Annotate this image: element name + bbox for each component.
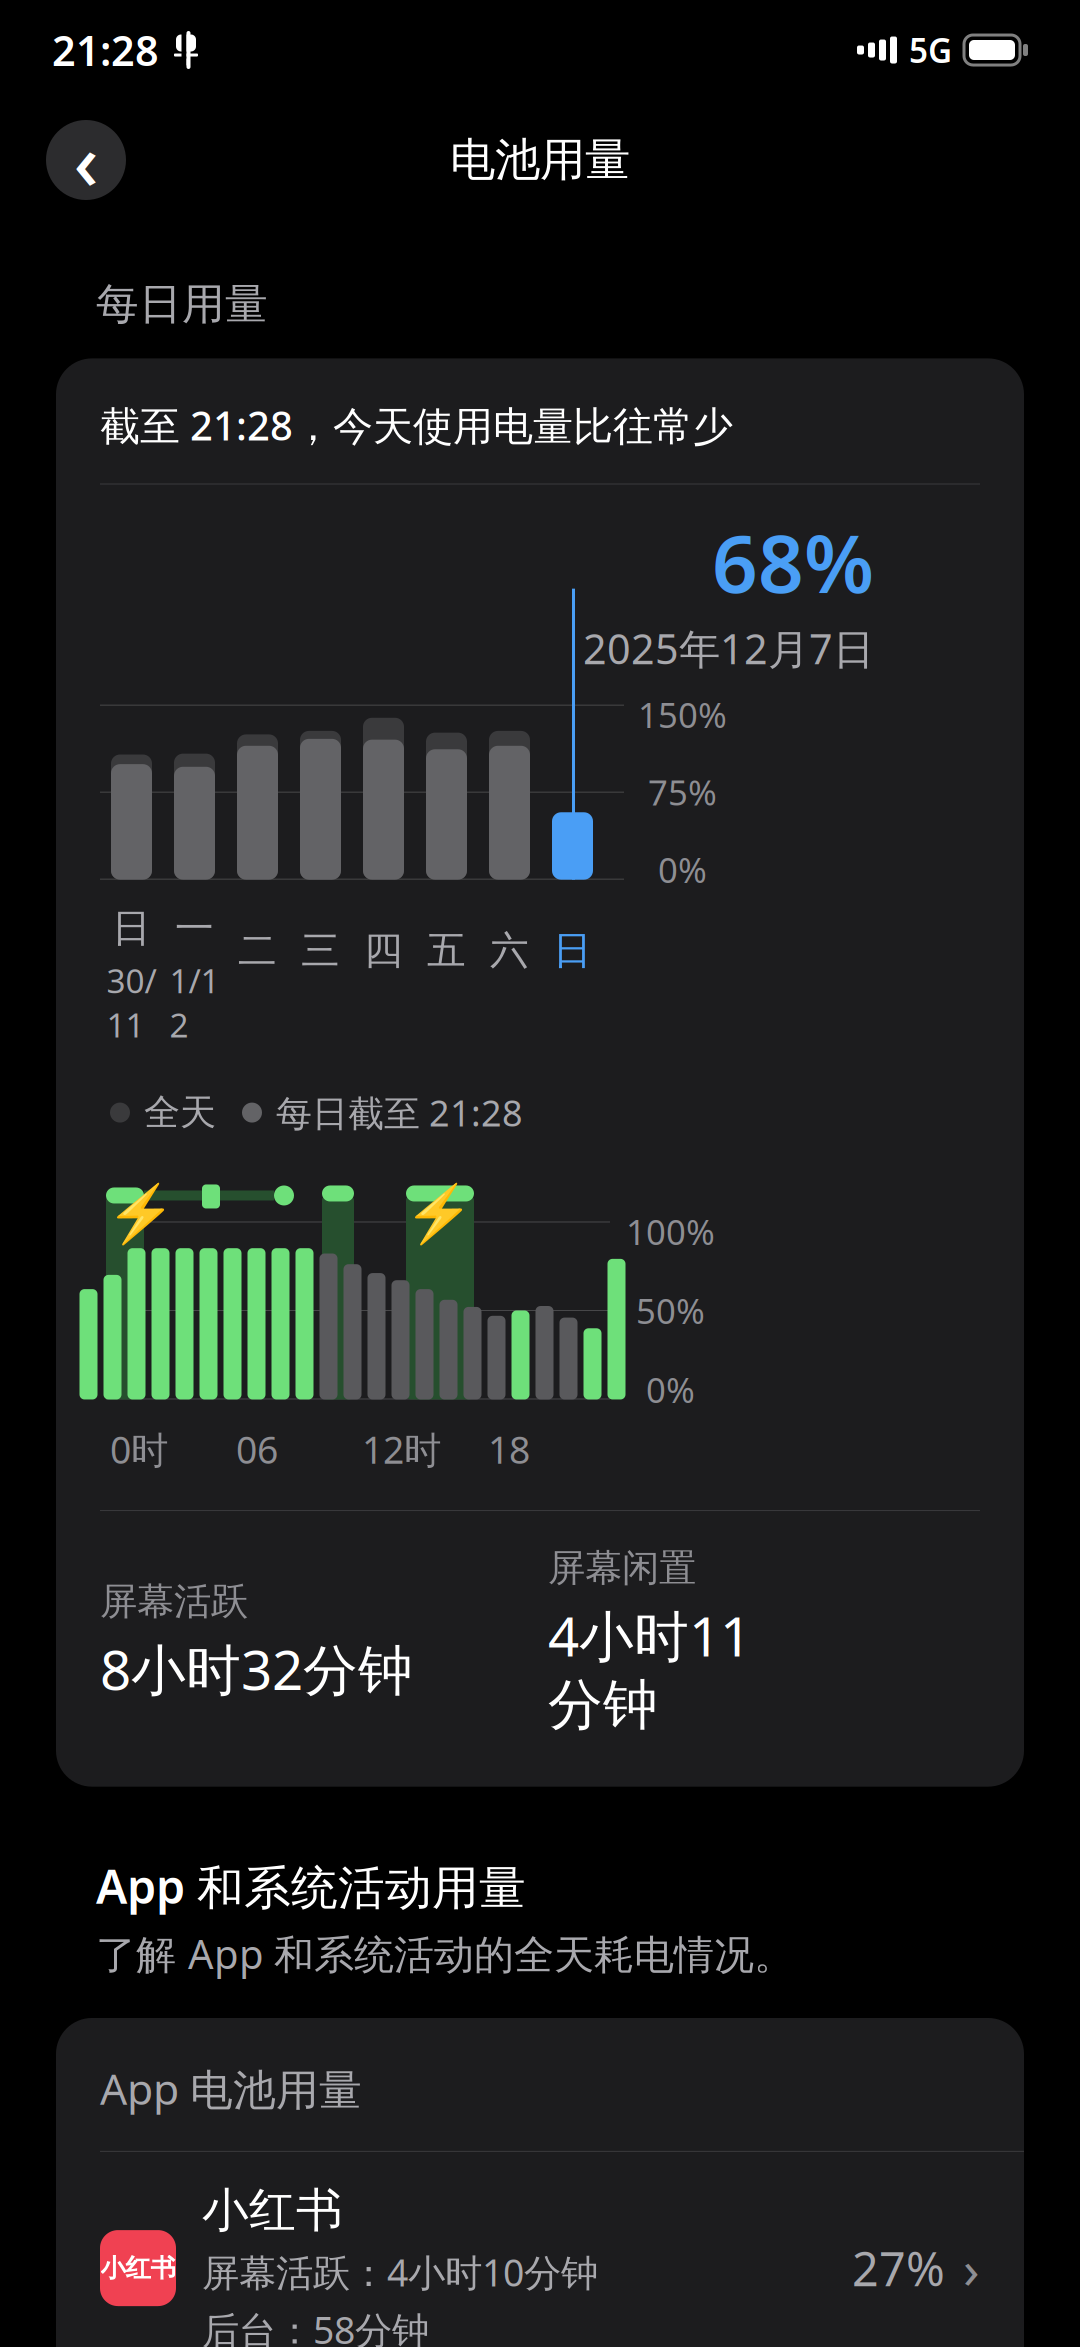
staticText: 五	[427, 927, 466, 974]
staticText: 1/12	[169, 958, 219, 1047]
staticText: 4小时11分钟	[548, 1599, 751, 1739]
staticText: 27%	[852, 2237, 945, 2299]
staticText: 150%	[638, 692, 727, 738]
staticText: 2025年12月7日	[583, 621, 874, 676]
staticText: 一	[175, 905, 214, 952]
staticText: 截至 21:28，今天使用电量比往常少	[100, 398, 733, 451]
staticText: App 和系统活动用量	[96, 1855, 526, 1917]
staticText: 12时	[362, 1424, 441, 1474]
staticText: 屏幕活跃	[100, 1579, 248, 1624]
staticText: ›	[963, 2233, 980, 2303]
staticText: 06	[236, 1424, 278, 1474]
button[interactable]: 小红书	[56, 2152, 1024, 2347]
staticText: ⚡	[404, 1181, 474, 1245]
staticText: 小红书	[202, 2182, 343, 2239]
staticText: 18	[488, 1424, 530, 1474]
staticText: 21:28	[52, 23, 159, 77]
staticText: 0时	[110, 1424, 168, 1474]
staticText: 68%	[712, 508, 874, 615]
staticText: 日	[553, 927, 592, 974]
staticText: ‹	[73, 109, 98, 211]
staticText: 屏幕活跃：4小时10分钟	[202, 2247, 598, 2297]
staticText: 三	[301, 927, 340, 974]
staticText: 0%	[658, 847, 707, 893]
staticText: 屏幕闲置	[548, 1545, 696, 1591]
staticText: 8小时32分钟	[100, 1632, 413, 1705]
staticText: 全天	[144, 1090, 216, 1135]
staticText: 日	[112, 905, 151, 952]
staticText: 电池用量	[450, 132, 630, 188]
staticText: 六	[490, 927, 529, 974]
staticText: 5G	[909, 28, 952, 72]
staticText: 后台：58分钟	[202, 2305, 429, 2347]
staticText: 每日截至 21:28	[276, 1089, 523, 1136]
staticText: App 电池用量	[100, 2060, 362, 2117]
staticText: 每日用量	[96, 278, 268, 330]
staticText: 小红书	[100, 2252, 175, 2284]
button[interactable]: 返回	[46, 109, 126, 211]
staticText: 50%	[636, 1287, 705, 1333]
staticText: 75%	[648, 769, 717, 815]
staticText: 30/11	[106, 958, 156, 1047]
staticText: ⚡	[106, 1181, 176, 1245]
staticText: 四	[364, 927, 403, 974]
staticText: 100%	[626, 1208, 715, 1254]
staticText: 了解 App 和系统活动的全天耗电情况。	[96, 1927, 794, 1980]
staticText: 0%	[646, 1366, 695, 1412]
staticText: 二	[238, 927, 277, 974]
